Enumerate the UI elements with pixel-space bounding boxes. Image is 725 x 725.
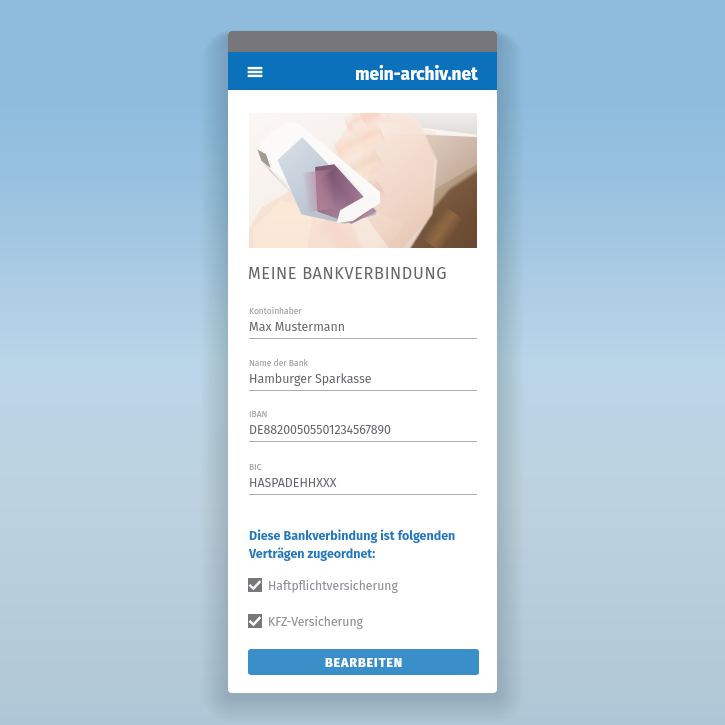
- staticText: MEINE BANKVERBINDUNG: [248, 264, 448, 284]
- button[interactable]: Open navigation menu: [243, 60, 267, 84]
- staticText: Name der Bank: [249, 358, 308, 368]
- button[interactable]: BEARBEITEN: [248, 649, 479, 675]
- staticText: BEARBEITEN: [325, 655, 403, 670]
- staticText: Kontoinhaber: [249, 306, 302, 316]
- staticText: Diese Bankverbindung ist folgenden: [249, 528, 456, 543]
- staticText: BIC: [249, 462, 262, 472]
- button[interactable]: Haftpflichtversicherung: [248, 578, 476, 596]
- staticText: Hamburger Sparkasse: [249, 371, 372, 386]
- staticText: IBAN: [249, 409, 268, 419]
- button[interactable]: KFZ-Versicherung: [248, 614, 476, 632]
- staticText: Verträgen zugeordnet:: [249, 546, 376, 561]
- staticText: HASPADEHHXXX: [249, 475, 337, 490]
- staticText: DE88200505501234567890: [249, 422, 391, 437]
- staticText: Max Mustermann: [249, 319, 346, 334]
- staticText: mein-archiv.net: [355, 64, 478, 85]
- staticText: KFZ-Versicherung: [268, 615, 363, 630]
- staticText: Haftpflichtversicherung: [268, 579, 398, 594]
